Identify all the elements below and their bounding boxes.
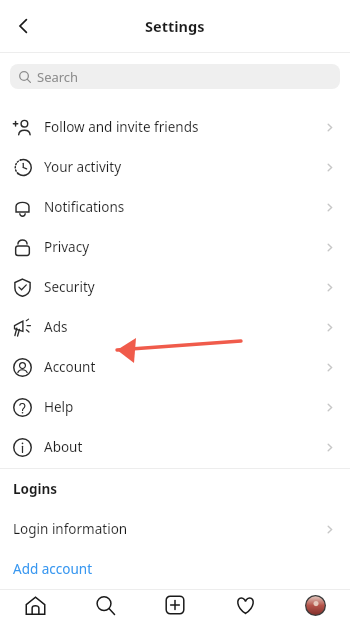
staticText: Logins bbox=[13, 480, 58, 498]
button[interactable]: Security bbox=[0, 267, 350, 307]
button[interactable]: Search bbox=[70, 590, 140, 620]
button[interactable]: Create bbox=[140, 590, 210, 620]
staticText: Settings bbox=[145, 16, 205, 36]
button[interactable]: Privacy bbox=[0, 227, 350, 267]
staticText: Follow and invite friends bbox=[44, 118, 199, 136]
button[interactable]: About bbox=[0, 427, 350, 467]
button[interactable]: Profile bbox=[280, 590, 350, 620]
button[interactable]: Add account bbox=[0, 549, 350, 589]
button[interactable]: Your activity bbox=[0, 147, 350, 187]
button[interactable]: Search bbox=[10, 64, 340, 89]
staticText: Login information bbox=[13, 520, 128, 538]
button[interactable]: Follow and invite friends bbox=[0, 107, 350, 147]
button[interactable]: Help bbox=[0, 387, 350, 427]
staticText: Help bbox=[44, 398, 74, 416]
staticText: Privacy bbox=[44, 238, 90, 256]
staticText: Account bbox=[44, 358, 96, 376]
button[interactable]: Home bbox=[0, 590, 70, 620]
button[interactable]: Ads bbox=[0, 307, 350, 347]
staticText: Notifications bbox=[44, 198, 125, 216]
button[interactable]: Notifications bbox=[0, 187, 350, 227]
staticText: About bbox=[44, 438, 83, 456]
button[interactable]: Login information bbox=[0, 509, 350, 549]
staticText: Search bbox=[37, 68, 79, 86]
button[interactable]: Account bbox=[0, 347, 350, 387]
staticText: Security bbox=[44, 278, 95, 296]
staticText: Your activity bbox=[44, 158, 122, 176]
staticText: Ads bbox=[44, 318, 68, 336]
button[interactable]: Activity bbox=[210, 590, 280, 620]
staticText: Add account bbox=[13, 560, 93, 578]
button[interactable]: Back bbox=[6, 8, 42, 44]
